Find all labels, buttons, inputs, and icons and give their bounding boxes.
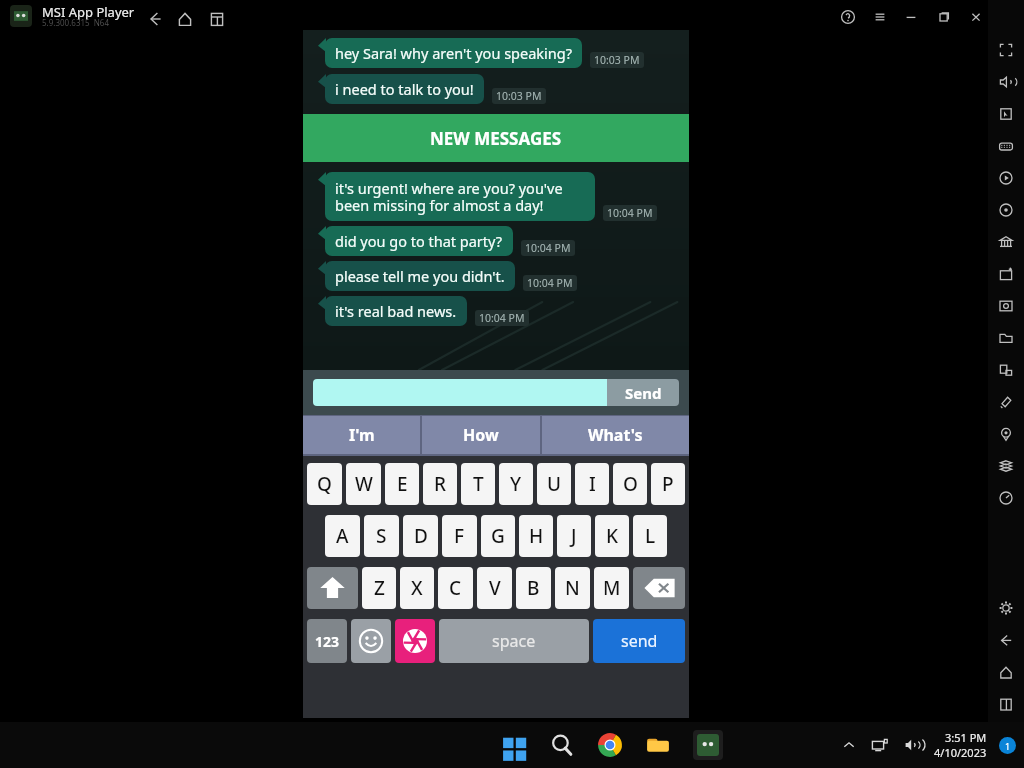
button[interactable]: F (442, 515, 477, 557)
staticText: N (565, 575, 580, 601)
button[interactable]: Fullscreen (996, 40, 1016, 60)
button[interactable]: Home (175, 9, 195, 29)
button[interactable]: X (400, 567, 434, 609)
button[interactable]: Start (501, 732, 527, 758)
staticText: i need to talk to you! (335, 79, 474, 99)
button[interactable]: A (325, 515, 360, 557)
button[interactable]: did you go to that party? (325, 226, 689, 256)
button[interactable]: I (575, 463, 609, 505)
button[interactable]: Volume (996, 72, 1016, 92)
button[interactable]: Multi instance (996, 232, 1016, 252)
button[interactable]: it's urgent! where are you? you've been … (325, 172, 689, 221)
button[interactable]: Keyboard mapping (996, 136, 1016, 156)
button[interactable]: please tell me you didn't. (325, 261, 689, 291)
button[interactable]: Shift (307, 567, 358, 609)
button[interactable]: Macro (996, 200, 1016, 220)
button[interactable]: Shake (996, 392, 1016, 412)
button[interactable]: R (423, 463, 457, 505)
button[interactable]: L (633, 515, 667, 557)
button[interactable]: W (346, 463, 381, 505)
staticText: 5.9.300.6315 N64 (42, 17, 110, 28)
staticText: it's urgent! where are you? you've been … (335, 178, 585, 215)
button[interactable]: Macro record (996, 168, 1016, 188)
button[interactable]: P (651, 463, 685, 505)
button[interactable]: Z (362, 567, 396, 609)
button[interactable]: Help (838, 7, 858, 27)
button[interactable]: NEW MESSAGES (303, 114, 689, 162)
button[interactable]: File Explorer (645, 732, 671, 758)
button[interactable]: Minimize (901, 7, 921, 27)
staticText: did you go to that party? (335, 231, 503, 251)
button[interactable]: Pointer (996, 104, 1016, 124)
button[interactable]: 3:51 PM (934, 730, 987, 760)
button[interactable]: O (613, 463, 647, 505)
button[interactable]: Show hidden icons (840, 736, 858, 754)
staticText: L (645, 523, 656, 549)
button[interactable]: D (403, 515, 438, 557)
button[interactable]: Q (307, 463, 342, 505)
button[interactable]: U (537, 463, 571, 505)
button[interactable]: Layers (996, 456, 1016, 476)
button[interactable]: Location (996, 424, 1016, 444)
button[interactable]: Performance (996, 488, 1016, 508)
button[interactable]: Close (966, 7, 986, 27)
button[interactable]: Back (996, 630, 1016, 650)
button[interactable]: Backspace (633, 567, 685, 609)
staticText: What's (588, 424, 643, 446)
button[interactable]: Menu (870, 7, 890, 27)
button[interactable]: Rotate (996, 360, 1016, 380)
staticText: U (547, 471, 562, 497)
button[interactable]: Shared folder (996, 328, 1016, 348)
button[interactable]: H (519, 515, 553, 557)
button[interactable]: M (594, 567, 629, 609)
button[interactable]: i need to talk to you! (325, 74, 689, 104)
button[interactable]: Emoji (351, 619, 391, 663)
button[interactable]: Settings (996, 598, 1016, 618)
button[interactable]: Search (549, 732, 575, 758)
staticText: 10:04 PM (479, 311, 525, 325)
button[interactable]: space (439, 619, 589, 663)
staticText: H (529, 523, 544, 549)
button[interactable]: Volume (902, 735, 922, 755)
staticText: space (492, 630, 536, 652)
button[interactable]: Screenshot (996, 296, 1016, 316)
button[interactable]: Restore (934, 7, 954, 27)
button[interactable]: Recents (996, 694, 1016, 714)
button[interactable]: Home (996, 662, 1016, 682)
button[interactable]: S (364, 515, 399, 557)
button[interactable]: Recents (207, 9, 227, 29)
button[interactable]: MSI App Player (693, 730, 723, 760)
button[interactable]: V (477, 567, 512, 609)
button[interactable]: Back (145, 9, 165, 29)
button[interactable]: Install APK (996, 264, 1016, 284)
button[interactable]: Network (870, 735, 890, 755)
button[interactable]: Notifications (999, 737, 1016, 754)
button[interactable]: How (422, 416, 540, 454)
button[interactable]: N (555, 567, 590, 609)
button[interactable]: Y (499, 463, 533, 505)
button[interactable]: Send (607, 379, 679, 406)
button[interactable]: Camera (395, 619, 435, 663)
button[interactable]: What's (542, 416, 689, 454)
button[interactable]: hey Sara! why aren't you speaking? (325, 38, 689, 68)
staticText: A (336, 523, 349, 549)
button[interactable]: I'm (303, 416, 420, 454)
button[interactable]: G (481, 515, 515, 557)
button[interactable]: it's real bad news. (325, 296, 689, 326)
staticText: M (603, 575, 621, 601)
staticText: 10:04 PM (525, 241, 571, 255)
button[interactable]: 123 (307, 619, 347, 663)
button[interactable]: C (438, 567, 473, 609)
button[interactable]: E (385, 463, 419, 505)
button[interactable]: Chrome (597, 732, 623, 758)
button[interactable]: J (557, 515, 591, 557)
staticText: P (662, 471, 674, 497)
staticText: S (376, 523, 387, 549)
button[interactable]: K (595, 515, 629, 557)
button[interactable]: send (593, 619, 685, 663)
button[interactable]: T (461, 463, 495, 505)
staticText: 123 (315, 632, 340, 651)
button[interactable] (313, 379, 607, 406)
button[interactable]: B (516, 567, 551, 609)
